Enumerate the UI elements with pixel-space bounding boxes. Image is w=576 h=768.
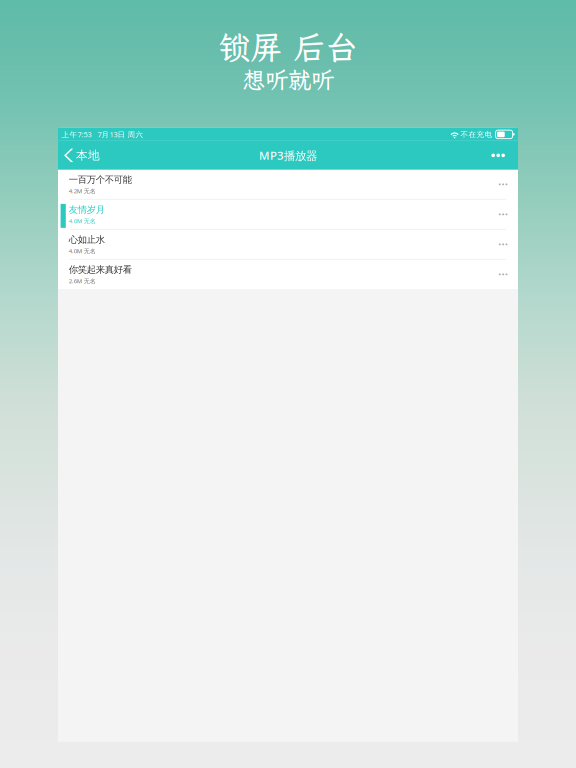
staticText: 一百万个不可能 [69, 174, 132, 185]
button[interactable]: 友情岁月 [58, 200, 518, 229]
button[interactable]: 一百万个不可能 [58, 170, 518, 199]
button[interactable]: 心如止水 [58, 230, 518, 259]
staticText: 友情岁月 [69, 204, 105, 215]
staticText: 想听就听 [242, 64, 334, 95]
button[interactable]: 本地 [58, 141, 108, 170]
staticText: 4.2M 无名 [69, 187, 96, 195]
staticText: MP3播放器 [259, 147, 317, 163]
staticText: 上午7:53 7月13日 周六 [61, 129, 143, 139]
button[interactable]: 你笑起来真好看 [58, 260, 518, 289]
staticText: 锁屏 后台 [218, 26, 357, 68]
staticText: 4.0M 无名 [69, 217, 96, 225]
staticText: 4.0M 无名 [69, 247, 96, 255]
staticText: 2.6M 无名 [69, 277, 96, 285]
staticText: 你笑起来真好看 [69, 264, 132, 275]
staticText: 不在充电 [461, 130, 493, 139]
staticText: 本地 [76, 148, 100, 163]
button[interactable]: 更多 [479, 141, 518, 170]
staticText: 心如止水 [69, 234, 105, 245]
